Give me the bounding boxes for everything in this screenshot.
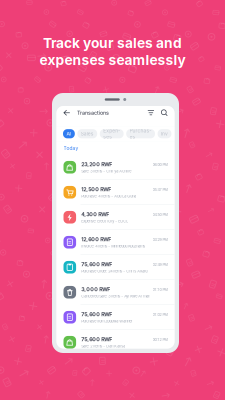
staticText: 3,000 RWF bbox=[81, 286, 110, 292]
button[interactable]: Back bbox=[62, 108, 71, 117]
staticText: Purchases bbox=[130, 128, 152, 140]
staticText: 05:47 PM bbox=[152, 187, 167, 192]
staticText: Transactions bbox=[77, 109, 109, 116]
button[interactable]: 75,600 RWF bbox=[56, 330, 174, 355]
button[interactable]: Search bbox=[160, 108, 169, 117]
button[interactable]: Filter bbox=[146, 108, 156, 117]
staticText: 75,600 RWF bbox=[81, 336, 112, 342]
staticText: 12,600 RWF bbox=[81, 236, 111, 242]
button[interactable]: Sales bbox=[77, 129, 97, 138]
staticText: Purchase: 4 items - Abu La Guna bbox=[81, 194, 136, 198]
staticText: Sales bbox=[81, 131, 94, 137]
staticText: Invoice: 4 items - Mhmedou Kouznams bbox=[81, 244, 145, 248]
staticText: 01:10 PM bbox=[152, 287, 167, 292]
staticText: expenses seamlessly bbox=[39, 52, 185, 68]
staticText: Track your sales and bbox=[43, 35, 182, 51]
staticText: Expense: Electricity - EUCL bbox=[81, 219, 128, 223]
button[interactable]: 3,000 RWF bbox=[56, 280, 174, 305]
staticText: 03:29 PM bbox=[152, 237, 167, 242]
button[interactable]: Inv bbox=[158, 129, 171, 138]
staticText: 00:12 PM bbox=[152, 337, 167, 342]
staticText: Today bbox=[63, 145, 78, 151]
staticText: 4,300 RWF bbox=[81, 211, 109, 217]
staticText: 01:02 PM bbox=[152, 312, 167, 317]
button[interactable]: 23,200 RWF bbox=[56, 155, 174, 180]
staticText: All bbox=[66, 131, 71, 137]
button[interactable]: 12,600 RWF bbox=[56, 230, 174, 255]
staticText: Sale: 2 items - Dan Kalisa bbox=[81, 344, 125, 348]
staticText: Sale: 3 items - Chirya Achille bbox=[81, 169, 131, 173]
staticText: 06:00 PM bbox=[152, 162, 167, 167]
staticText: Purchase Order: 24 items - Chris Akard bbox=[81, 269, 147, 273]
staticText: Inv bbox=[161, 131, 168, 137]
button[interactable]: Expenses bbox=[100, 129, 124, 138]
button[interactable]: Purchases bbox=[126, 129, 155, 138]
button[interactable]: 75,600 RWF bbox=[56, 255, 174, 280]
button[interactable]: 12,500 RWF bbox=[56, 180, 174, 205]
button[interactable]: All bbox=[63, 129, 75, 138]
staticText: 23,200 RWF bbox=[81, 161, 112, 167]
button[interactable]: 4,300 RWF bbox=[56, 205, 174, 230]
staticText: Purchase from Zoduwa Wanner bbox=[81, 319, 132, 323]
button[interactable]: 75,600 RWF bbox=[56, 305, 174, 330]
staticText: Expenses bbox=[103, 128, 120, 140]
staticText: Cancelled Sale: 3 items - Ayi Kwe Armah bbox=[81, 294, 150, 298]
staticText: 75,600 RWF bbox=[81, 311, 112, 317]
staticText: 04:50 PM bbox=[152, 212, 167, 217]
staticText: 75,600 RWF bbox=[81, 261, 112, 267]
staticText: 02:49 PM bbox=[152, 262, 167, 267]
staticText: 12,500 RWF bbox=[81, 186, 111, 192]
